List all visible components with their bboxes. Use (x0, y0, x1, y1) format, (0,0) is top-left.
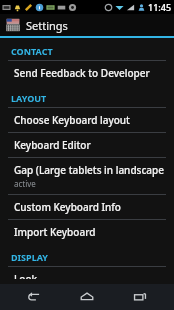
staticText: Gap (Large tablets in landscape mode (14, 163, 166, 177)
button[interactable]: Choose Keyboard layout (0, 108, 174, 132)
button[interactable]: Import Keyboard (0, 220, 174, 244)
button[interactable]: Send Feedback to Developer (0, 61, 174, 85)
staticText: LAYOUT (11, 92, 47, 104)
staticText: active (14, 178, 36, 189)
button[interactable]: Look (0, 267, 174, 284)
button[interactable]: Settings (0, 14, 174, 36)
staticText: Look (14, 272, 38, 279)
staticText: Send Feedback to Developer (14, 66, 150, 80)
button[interactable]: Keyboard Editor (0, 133, 174, 157)
staticText: CONTACT (11, 45, 53, 57)
staticText: Settings (26, 18, 68, 33)
staticText: Keyboard Editor (14, 138, 91, 152)
staticText: Import Keyboard (14, 225, 96, 239)
button[interactable]: Gap (Large tablets in landscape mode (0, 158, 174, 194)
staticText: 11:45 (148, 1, 172, 13)
button[interactable]: Recent apps (121, 284, 159, 310)
button[interactable]: Home (68, 284, 106, 310)
staticText: Choose Keyboard layout (14, 113, 130, 127)
staticText: Custom Keyboard Info (14, 200, 121, 214)
staticText: DISPLAY (11, 251, 48, 263)
button[interactable]: Back (15, 284, 53, 310)
button[interactable]: Custom Keyboard Info (0, 195, 174, 219)
